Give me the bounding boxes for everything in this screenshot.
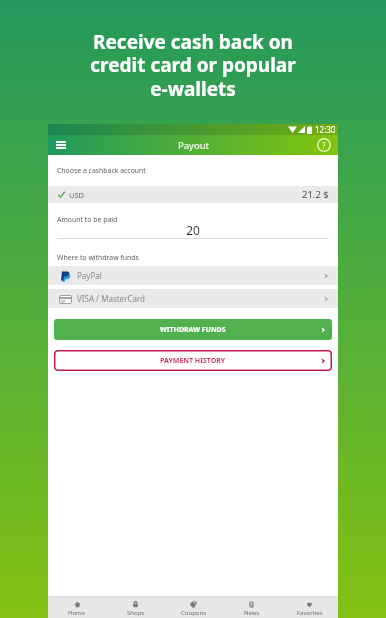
button[interactable]: Home xyxy=(48,598,106,617)
staticText: News xyxy=(244,609,260,617)
staticText: Amount to be paid xyxy=(57,215,118,224)
staticText: Choose a cashback account xyxy=(57,166,146,175)
staticText: VISA / MasterCard xyxy=(77,293,146,304)
staticText: WITHDRAW FUNDS xyxy=(160,325,226,335)
staticText: Where to withdraw funds xyxy=(57,253,139,262)
button[interactable]: Favorites xyxy=(281,598,338,617)
button[interactable]: PayPal xyxy=(48,266,338,285)
button[interactable]: Shops xyxy=(107,598,164,617)
staticText: Shops xyxy=(127,609,145,617)
button[interactable]: Help xyxy=(317,138,331,152)
staticText: 21.2 $ xyxy=(302,188,329,201)
button[interactable]: USD xyxy=(48,186,338,203)
staticText: PAYMENT HISTORY xyxy=(160,356,226,366)
staticText: PayPal xyxy=(77,270,102,281)
staticText: 12:30 xyxy=(315,124,336,135)
button[interactable]: Coupons xyxy=(165,598,222,617)
staticText: 20 xyxy=(48,222,338,238)
staticText: Payout xyxy=(178,139,209,152)
staticText: Coupons xyxy=(181,609,207,617)
staticText: Home xyxy=(68,609,86,617)
button[interactable]: VISA / MasterCard xyxy=(48,289,338,308)
staticText: USD xyxy=(69,190,85,200)
staticText: Favorites xyxy=(297,609,323,617)
staticText: Receive cash back on credit card or popu… xyxy=(90,29,296,102)
button[interactable]: News xyxy=(223,598,280,617)
button[interactable]: PAYMENT HISTORY xyxy=(54,350,332,371)
button[interactable]: WITHDRAW FUNDS xyxy=(54,319,332,340)
staticText: ? xyxy=(322,140,326,151)
button[interactable]: Menu xyxy=(54,138,68,152)
